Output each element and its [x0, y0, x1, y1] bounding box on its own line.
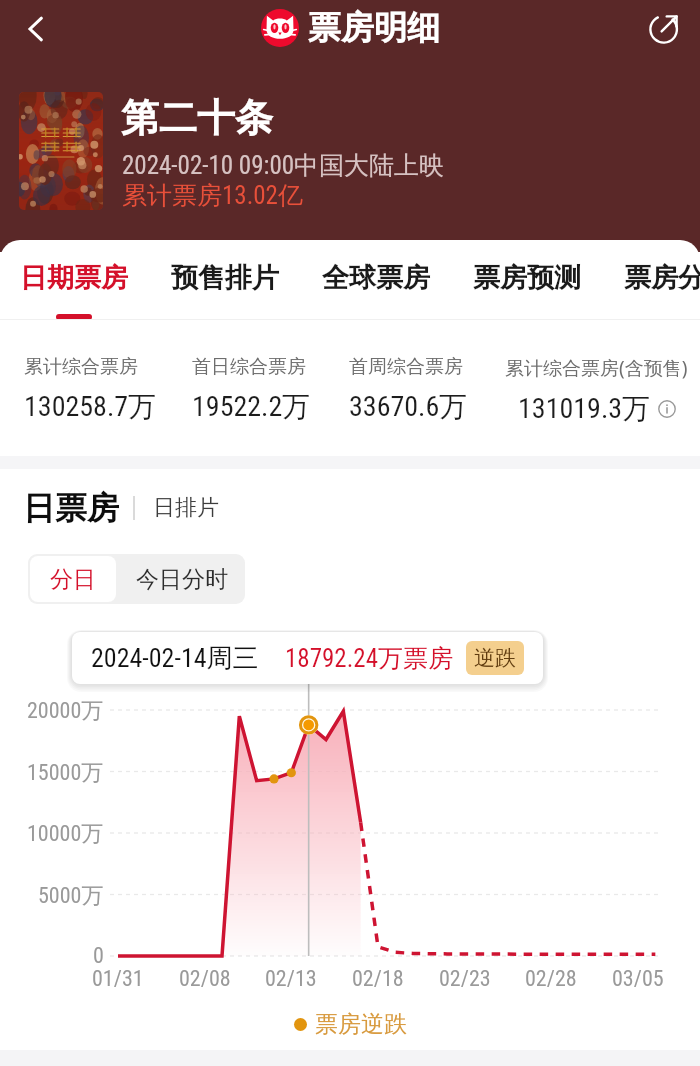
- staticText: 15000万: [27, 759, 104, 787]
- staticText: 逆跌: [474, 645, 516, 671]
- staticText: 全球票房: [322, 261, 430, 295]
- staticText: 130258.7万: [24, 389, 157, 424]
- staticText: 10000万: [27, 820, 104, 848]
- button[interactable]: 全球票房: [322, 261, 430, 295]
- button[interactable]: 日期票房: [20, 261, 128, 320]
- button[interactable]: Share: [638, 3, 690, 55]
- button[interactable]: 今日分时: [118, 554, 245, 604]
- button[interactable]: Back: [10, 3, 62, 55]
- staticText: 02/28: [525, 966, 577, 992]
- staticText: 19522.2万: [192, 389, 311, 424]
- staticText: 票房分: [624, 261, 700, 295]
- button[interactable]: 分日: [28, 554, 118, 604]
- staticText: 首日综合票房: [192, 355, 306, 379]
- staticText: 日票房: [23, 488, 119, 528]
- staticText: 02/18: [352, 966, 404, 992]
- staticText: 2024-02-14周三: [91, 642, 259, 675]
- button[interactable]: 票房分: [624, 261, 700, 295]
- staticText: 今日分时: [136, 565, 228, 594]
- staticText: 02/08: [179, 966, 231, 992]
- staticText: 20000万: [27, 697, 104, 725]
- staticText: 累计综合票房: [24, 355, 138, 379]
- staticText: 累计票房13.02亿: [122, 180, 303, 211]
- staticText: 03/05: [612, 966, 664, 992]
- staticText: 18792.24万票房: [285, 643, 453, 674]
- staticText: 预售排片: [171, 261, 279, 295]
- staticText: 5000万: [38, 882, 104, 910]
- staticText: 0: [93, 943, 104, 969]
- staticText: 日排片: [153, 494, 219, 522]
- staticText: 2024-02-10 09:00中国大陆上映: [122, 150, 445, 181]
- staticText: 02/13: [265, 966, 317, 992]
- staticText: 分日: [50, 565, 96, 594]
- staticText: 131019.3万: [518, 391, 651, 426]
- staticText: 累计综合票房(含预售): [505, 355, 688, 381]
- staticText: 日期票房: [20, 261, 128, 295]
- staticText: 02/23: [439, 966, 491, 992]
- staticText: 票房明细: [308, 7, 440, 49]
- staticText: 票房逆跌: [315, 1010, 407, 1039]
- button[interactable]: 预售排片: [171, 261, 279, 295]
- staticText: 第二十条: [121, 94, 273, 142]
- staticText: 首周综合票房: [349, 355, 463, 379]
- staticText: 01/31: [92, 966, 144, 992]
- staticText: 33670.6万: [349, 389, 468, 424]
- button[interactable]: 票房预测: [473, 261, 581, 295]
- button[interactable]: 日排片: [153, 494, 219, 522]
- staticText: 票房预测: [473, 261, 581, 295]
